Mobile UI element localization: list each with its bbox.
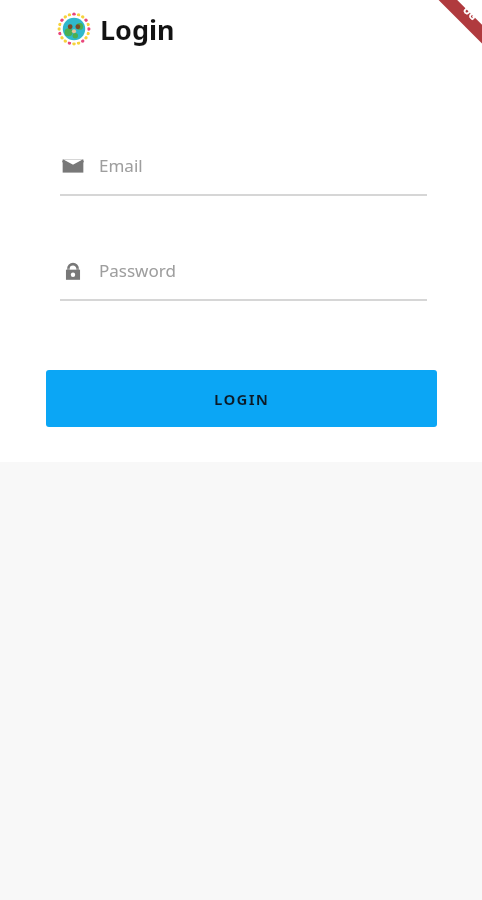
staticText: Email [99,154,143,177]
staticText: LOGIN [214,389,270,409]
other: Email field [60,153,85,178]
other: Password field [60,258,85,283]
staticText: UG [460,3,481,23]
button[interactable]: Email field [60,148,427,196]
button[interactable]: LOGIN [46,370,437,427]
button[interactable]: Password field [60,253,427,301]
staticText: Password [99,259,176,282]
staticText: Login [100,11,175,48]
